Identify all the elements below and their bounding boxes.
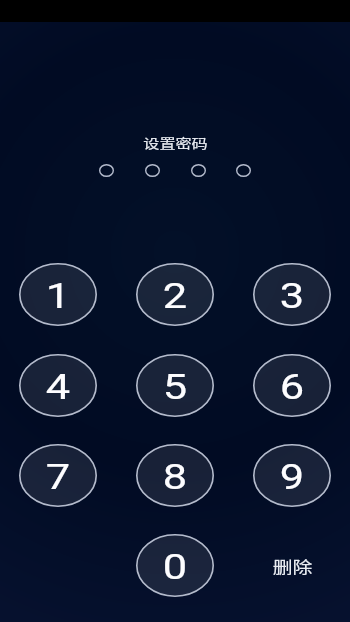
- staticText: 6: [280, 367, 304, 408]
- staticText: 4: [46, 367, 70, 408]
- staticText: 设置密码: [143, 133, 208, 152]
- button[interactable]: 5: [136, 354, 214, 417]
- button[interactable]: 6: [253, 354, 331, 417]
- button[interactable]: 3: [253, 263, 331, 326]
- staticText: 1: [46, 276, 70, 317]
- button[interactable]: 8: [136, 444, 214, 507]
- button[interactable]: 7: [19, 444, 97, 507]
- button[interactable]: 2: [136, 263, 214, 326]
- staticText: 3: [280, 276, 304, 317]
- button[interactable]: 0: [136, 534, 214, 597]
- button[interactable]: 1: [19, 263, 97, 326]
- staticText: 0: [163, 547, 187, 588]
- staticText: 7: [46, 457, 70, 498]
- button[interactable]: 9: [253, 444, 331, 507]
- button[interactable]: Delete: [259, 549, 325, 581]
- staticText: 2: [163, 276, 187, 317]
- staticText: 9: [280, 457, 304, 498]
- staticText: 8: [163, 457, 187, 498]
- staticText: 5: [163, 367, 187, 408]
- button[interactable]: 4: [19, 354, 97, 417]
- staticText: 删除: [272, 554, 313, 577]
